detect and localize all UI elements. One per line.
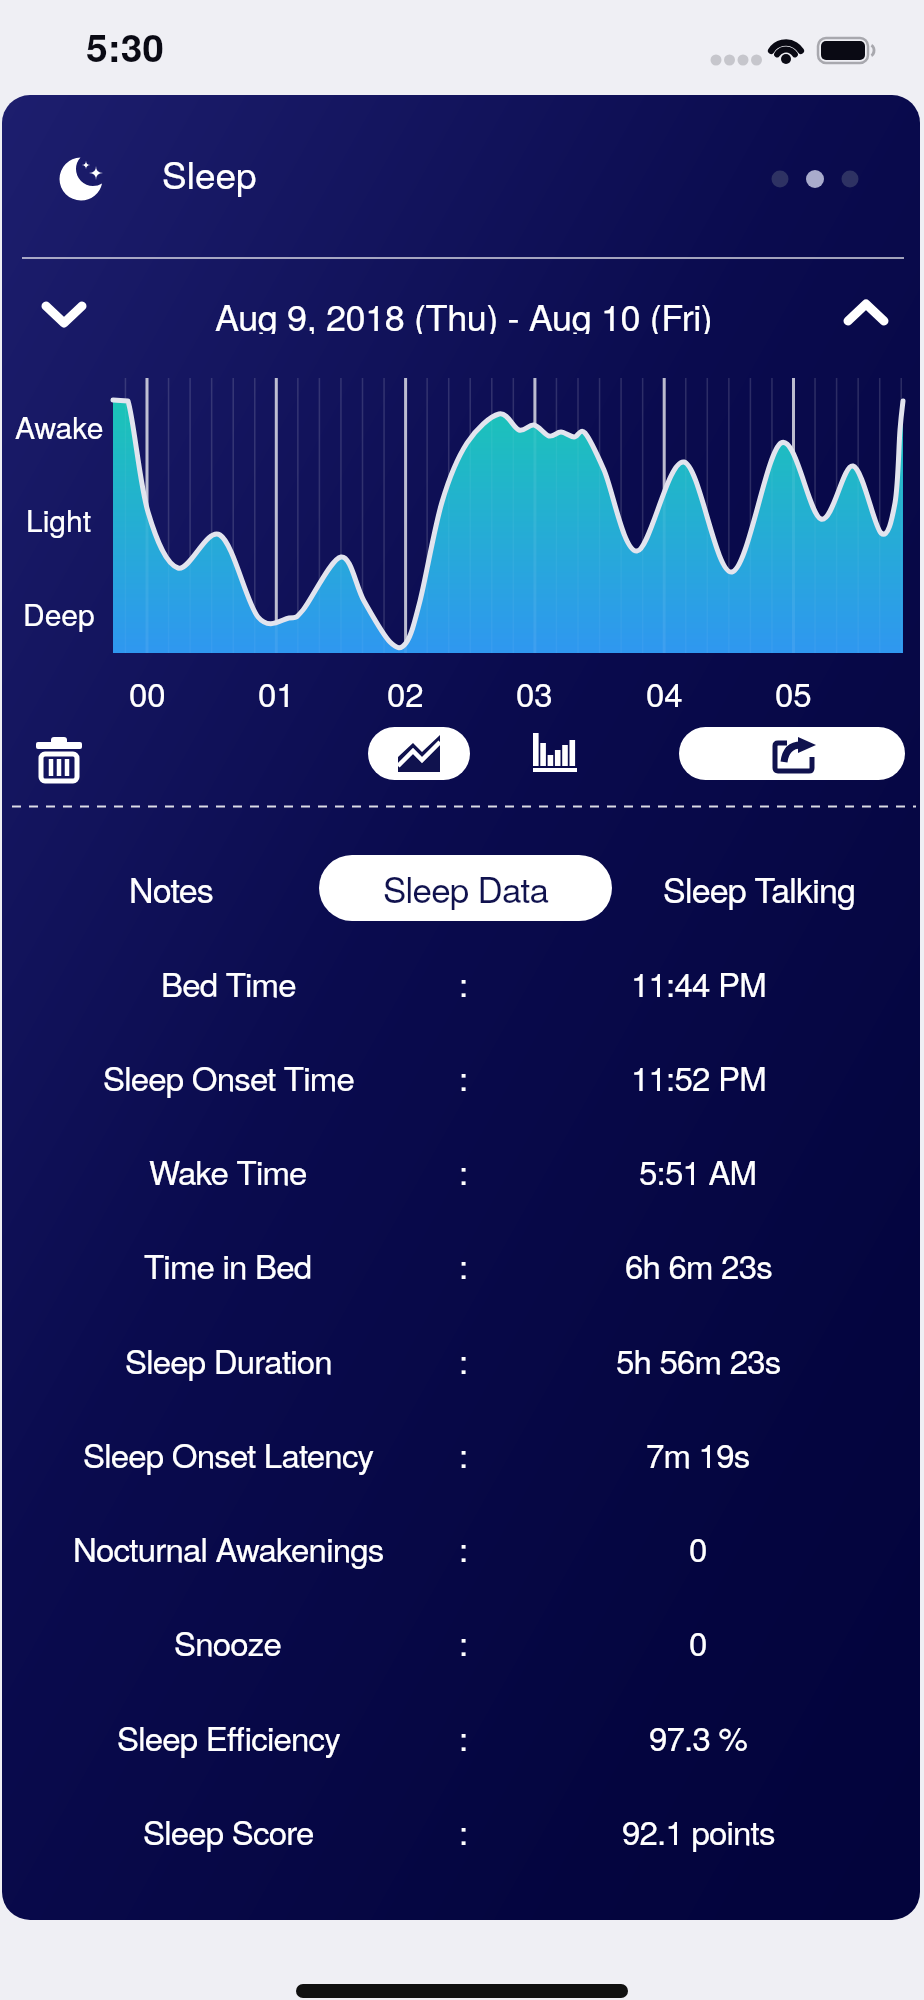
- button[interactable]: Notes: [62, 855, 280, 921]
- staticText: Nocturnal Awakenings: [73, 1524, 384, 1571]
- staticText: :: [459, 1618, 468, 1665]
- staticText: Sleep Duration: [125, 1336, 332, 1383]
- staticText: 5:51 AM: [639, 1147, 757, 1194]
- staticText: 0: [689, 1524, 707, 1571]
- button[interactable]: [840, 290, 892, 334]
- staticText: Light: [26, 498, 92, 538]
- staticText: 00: [129, 669, 166, 713]
- staticText: Notes: [129, 864, 213, 913]
- button[interactable]: [679, 727, 905, 780]
- staticText: Sleep Score: [143, 1807, 314, 1854]
- staticText: :: [459, 1430, 468, 1477]
- staticText: Snooze: [174, 1618, 282, 1665]
- button[interactable]: [38, 290, 90, 334]
- staticText: 02: [387, 669, 424, 713]
- staticText: Wake Time: [149, 1147, 307, 1194]
- button[interactable]: [55, 151, 111, 207]
- staticText: 7m 19s: [646, 1430, 750, 1477]
- staticText: :: [459, 1807, 468, 1854]
- staticText: Deep: [23, 592, 95, 632]
- staticText: :: [459, 1713, 468, 1760]
- staticText: 6h 6m 23s: [625, 1241, 772, 1288]
- staticText: :: [459, 1336, 468, 1383]
- staticText: :: [459, 1147, 468, 1194]
- staticText: Aug 9, 2018 (Thu) - Aug 10 (Fri): [215, 290, 713, 334]
- staticText: :: [459, 1053, 468, 1100]
- staticText: 5:30: [86, 18, 165, 74]
- staticText: :: [459, 1241, 468, 1288]
- staticText: Sleep Onset Time: [103, 1053, 354, 1100]
- staticText: Sleep Onset Latency: [83, 1430, 374, 1477]
- staticText: 11:44 PM: [631, 959, 766, 1006]
- staticText: 05: [775, 669, 812, 713]
- staticText: Sleep Efficiency: [117, 1713, 340, 1760]
- staticText: 03: [516, 669, 553, 713]
- button[interactable]: Sleep Data: [319, 855, 612, 921]
- staticText: 01: [258, 669, 295, 713]
- staticText: 04: [646, 669, 683, 713]
- button[interactable]: [368, 727, 470, 780]
- button[interactable]: [533, 733, 581, 773]
- staticText: 92.1 points: [622, 1807, 775, 1854]
- staticText: 5h 56m 23s: [616, 1336, 781, 1383]
- staticText: Bed Time: [161, 959, 296, 1006]
- staticText: Sleep: [162, 147, 257, 200]
- staticText: Awake: [15, 405, 104, 445]
- staticText: 97.3 %: [649, 1713, 747, 1760]
- staticText: Time in Bed: [144, 1241, 312, 1288]
- button[interactable]: [34, 733, 84, 785]
- staticText: 11:52 PM: [631, 1053, 766, 1100]
- staticText: :: [459, 959, 468, 1006]
- staticText: Sleep Data: [383, 863, 549, 913]
- staticText: :: [459, 1524, 468, 1571]
- button[interactable]: Sleep Talking: [642, 855, 876, 921]
- staticText: Sleep Talking: [663, 864, 856, 913]
- staticText: 0: [689, 1618, 707, 1665]
